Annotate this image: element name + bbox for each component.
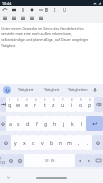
staticText: 1 [9,98,11,102]
button[interactable]: Redo [9,6,18,14]
button[interactable]: u [58,97,67,112]
staticText: 10:44 [2,1,12,6]
button[interactable]: Undo [0,6,9,14]
button[interactable]: f [32,116,41,131]
staticText: 0 [89,98,91,102]
button[interactable]: Hide keyboard [5,174,12,181]
button[interactable]: Right [84,154,93,167]
button[interactable]: z [49,97,58,112]
button[interactable]: h [50,116,59,131]
button[interactable]: , [74,135,83,150]
button[interactable]: Voice input [91,86,99,94]
button[interactable]: U [63,7,72,13]
button[interactable]: Left [75,154,84,167]
staticText: ?123 [0,157,6,165]
button[interactable]: B [45,7,54,13]
button[interactable]: b [47,135,56,150]
button[interactable]: Tätigkeit [12,84,39,95]
button[interactable]: align3 [27,14,36,22]
button[interactable]: Tätigkeiten [65,84,91,95]
staticText: Tätigkeit [18,87,34,92]
button[interactable]: Format [36,6,45,14]
staticText: Unter einem Gewerbe im Sinne des Handels… [1,26,96,48]
button[interactable]: Backspace [94,97,103,112]
button[interactable]: a [6,116,14,131]
staticText: f [36,120,38,127]
staticText: e [25,101,28,108]
staticText: z [52,101,55,108]
button[interactable]: Shift [0,135,11,150]
staticText: j [63,120,65,127]
button[interactable]: d [23,116,32,131]
staticText: v [41,139,44,146]
button[interactable]: q [6,97,14,112]
staticText: t [44,101,46,108]
button[interactable]: y [11,135,20,150]
button[interactable]: t [40,97,49,112]
button[interactable]: align2 [18,14,27,22]
staticText: w [16,101,21,108]
button[interactable]: align1 [9,14,18,22]
staticText: Tätigkeit [44,87,60,92]
button[interactable]: Text color [27,6,36,14]
button[interactable]: Settings [6,154,15,167]
button[interactable]: n [56,135,65,150]
button[interactable]: i [67,97,76,112]
staticText: l [81,120,83,127]
button[interactable]: c [29,135,38,150]
staticText: o [79,101,83,108]
button[interactable]: w [14,97,22,112]
staticText: 2 [17,98,19,102]
staticText: 3 [26,98,28,102]
staticText: 4 [35,98,37,102]
staticText: i [71,101,73,108]
button[interactable]: Emoji [15,154,24,167]
button[interactable]: l [77,116,86,131]
button[interactable]: Tab [0,97,6,112]
button[interactable]: s [14,116,23,131]
button[interactable]: j [59,116,68,131]
staticText: 7 [62,98,64,102]
button[interactable]: Tätigkeit [39,84,65,95]
button[interactable]: align0 [0,14,9,22]
staticText: 9 [80,98,82,102]
staticText: DE · EN [45,159,55,163]
button[interactable]: Caps lock [0,116,6,131]
button[interactable]: k [68,116,77,131]
staticText: q [8,101,12,108]
button[interactable]: o [76,97,85,112]
staticText: s [17,120,20,127]
staticText: 5 [44,98,46,102]
button[interactable]: v [38,135,47,150]
staticText: . [87,139,89,146]
button[interactable]: Shift right [92,135,103,150]
staticText: n [59,139,63,146]
staticText: Tätigkeiten [68,87,88,92]
staticText: y [14,139,17,146]
staticText: u [61,101,65,108]
button[interactable]: r [31,97,40,112]
staticText: m [67,139,72,146]
button[interactable]: I [54,7,63,13]
button[interactable]: Symbols [0,154,6,167]
staticText: k [71,120,74,127]
button[interactable]: Enter [86,116,103,131]
staticText: r [34,101,37,108]
button[interactable]: Space [24,154,75,167]
staticText: d [26,120,30,127]
button[interactable]: p [85,97,94,112]
staticText: p [88,101,92,108]
button[interactable]: Gboard menu [3,86,11,94]
staticText: 8 [71,98,73,102]
button[interactable]: align4 [36,14,45,22]
button[interactable]: Sticker [93,154,103,167]
button[interactable]: e [22,97,31,112]
button[interactable]: m [65,135,74,150]
button[interactable]: Attach [18,6,27,14]
staticText: h [53,120,57,127]
button[interactable]: x [20,135,29,150]
staticText: b [50,139,54,146]
button[interactable]: g [41,116,50,131]
button[interactable]: . [83,135,92,150]
staticText: , [78,139,80,146]
